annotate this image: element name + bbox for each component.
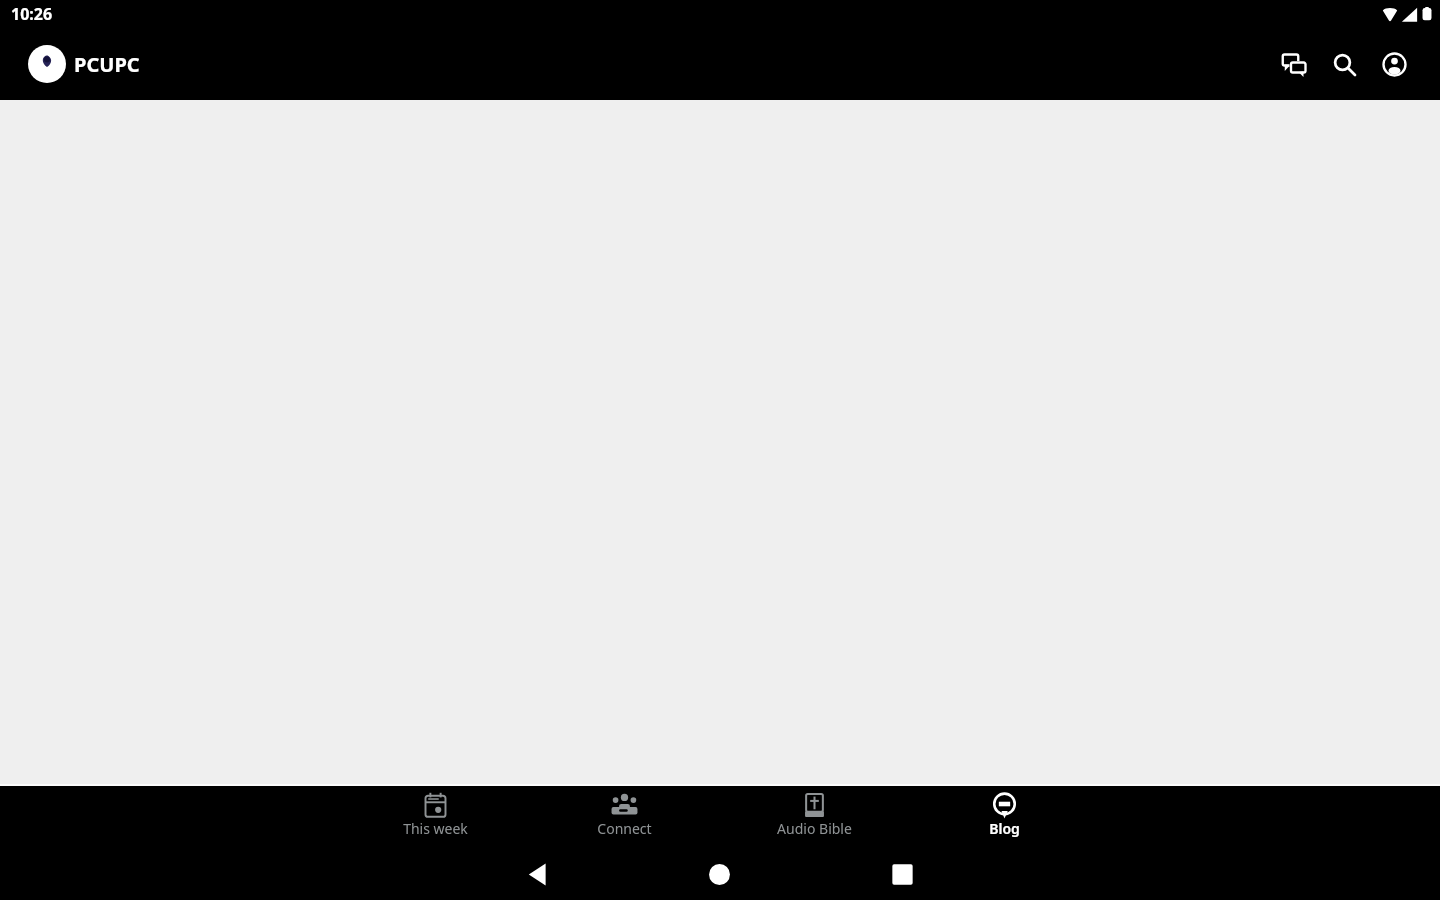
button[interactable]: Back: [446, 848, 628, 900]
button[interactable]: Account: [1369, 39, 1419, 89]
staticText: This week: [403, 819, 468, 838]
staticText: PCUPC: [74, 51, 140, 78]
button[interactable]: Search: [1319, 39, 1369, 89]
staticText: 10:26: [11, 3, 53, 25]
button[interactable]: Messages: [1269, 39, 1319, 89]
staticText: Blog: [989, 819, 1020, 838]
staticText: Audio Bible: [777, 819, 852, 838]
button[interactable]: Home: [628, 848, 811, 900]
button[interactable]: Blog: [909, 786, 1099, 848]
staticText: Connect: [597, 819, 652, 838]
button[interactable]: Church logo: [28, 45, 66, 83]
button[interactable]: Connect: [530, 786, 719, 848]
button[interactable]: This week: [341, 786, 530, 848]
button[interactable]: Audio Bible: [719, 786, 909, 848]
button[interactable]: Recents: [811, 848, 994, 900]
